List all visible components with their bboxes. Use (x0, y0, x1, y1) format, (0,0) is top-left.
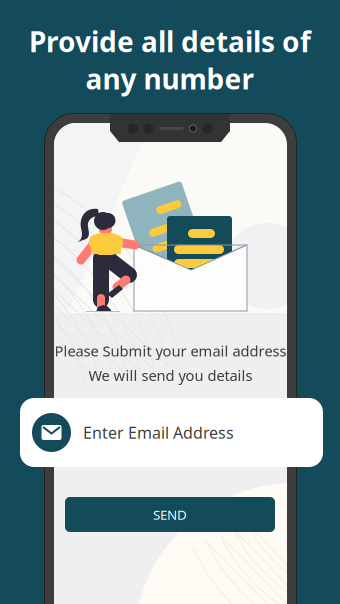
staticText: Enter Email Address (83, 422, 234, 443)
staticText: We will send you details (88, 365, 252, 385)
staticText: any number (85, 60, 254, 97)
staticText: SEND (153, 506, 187, 523)
button[interactable]: SEND (65, 497, 275, 532)
staticText: Please Submit your email address (54, 341, 286, 360)
staticText: Provide all details of (29, 23, 311, 60)
button[interactable]: Enter Email Address (20, 398, 323, 467)
